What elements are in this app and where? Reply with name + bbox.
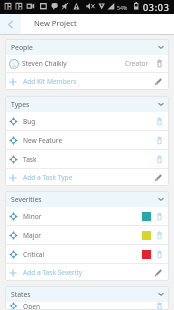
staticText: Severities [11, 195, 42, 204]
button[interactable]: Open [5, 302, 169, 310]
staticText: Steven Chalkly [22, 59, 67, 68]
button[interactable]: New Feature [5, 131, 169, 149]
button[interactable]: Delete [154, 249, 165, 260]
staticText: Types [11, 100, 30, 109]
staticText: Add Kit Members [23, 77, 77, 86]
staticText: Add a Task Severity [23, 268, 83, 277]
button[interactable]: Task [5, 150, 169, 168]
staticText: Add a Task Type [23, 173, 73, 182]
button[interactable]: Delete [154, 211, 165, 222]
button[interactable]: Bug [5, 112, 169, 130]
button[interactable]: Delete [154, 154, 165, 165]
staticText: Major [23, 231, 42, 240]
button[interactable]: Delete [154, 58, 165, 69]
staticText: New Project [34, 18, 77, 28]
button[interactable]: Add Kit Members [5, 73, 169, 90]
button[interactable]: States [5, 286, 169, 302]
button[interactable]: Add a Task Type [5, 169, 169, 186]
button[interactable]: Edit [152, 171, 165, 184]
button[interactable]: Critical [5, 245, 169, 263]
staticText: Open [23, 302, 40, 310]
staticText: New Feature [23, 136, 63, 145]
staticText: Creator [125, 59, 149, 68]
button[interactable]: Delete [154, 116, 165, 127]
staticText: Minor [23, 212, 42, 221]
staticText: States [11, 290, 31, 299]
button[interactable]: Severities [5, 191, 169, 207]
button[interactable]: People [5, 39, 169, 55]
button[interactable]: Edit [152, 75, 165, 88]
button[interactable]: Add a Task Severity [5, 264, 169, 281]
button[interactable]: Back [0, 14, 21, 35]
button[interactable]: Types [5, 96, 169, 112]
button[interactable]: Delete [154, 302, 165, 310]
button[interactable]: Steven Chalkly [5, 55, 169, 72]
staticText: 03:03 [143, 1, 170, 13]
button[interactable]: Major [5, 226, 169, 244]
button[interactable]: Delete [154, 135, 165, 146]
staticText: Task [23, 155, 37, 164]
staticText: 54% [117, 4, 128, 11]
button[interactable]: Minor [5, 207, 169, 225]
staticText: People [11, 43, 33, 52]
button[interactable]: Edit [152, 266, 165, 279]
staticText: Critical [23, 250, 45, 259]
button[interactable]: Delete [154, 230, 165, 241]
staticText: Bug [23, 117, 36, 126]
